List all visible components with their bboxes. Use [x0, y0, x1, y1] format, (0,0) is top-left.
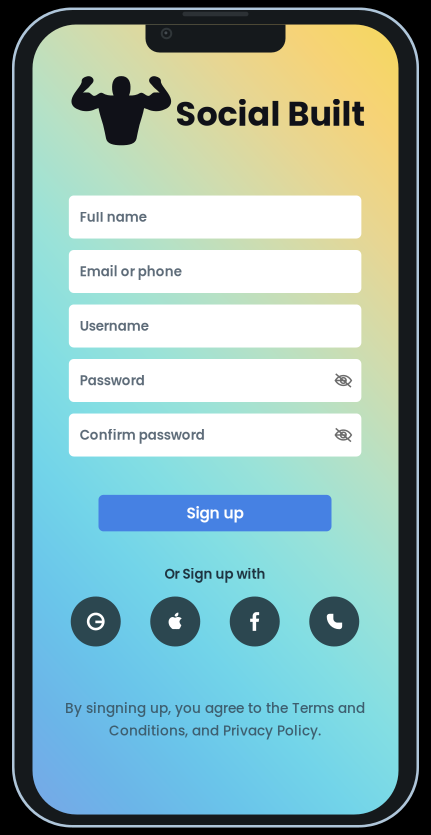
button[interactable]: Password [69, 359, 361, 402]
staticText: Confirm password [80, 426, 205, 444]
staticText: Full name [80, 208, 147, 226]
button[interactable]: Sign up [98, 495, 331, 531]
staticText: Username [80, 317, 149, 335]
staticText: Or Sign up with [164, 565, 265, 583]
button[interactable]: Email or phone [69, 250, 361, 293]
staticText: By singning up, you agree to the Terms a… [65, 699, 365, 718]
button[interactable]: Sign up with Google [71, 596, 121, 646]
staticText: Sign up [186, 502, 243, 524]
staticText: Conditions, and Privacy Policy. [109, 721, 321, 740]
button[interactable]: Sign up with Apple [150, 596, 200, 646]
button[interactable]: Confirm password [69, 413, 361, 456]
button[interactable]: Full name [69, 195, 361, 238]
staticText: Social Built [175, 91, 365, 137]
button[interactable]: Username [69, 304, 361, 347]
staticText: Email or phone [80, 262, 182, 281]
button[interactable]: Sign up with phone number [309, 596, 359, 646]
button[interactable]: Sign up with Facebook [230, 596, 280, 646]
staticText: Password [80, 371, 145, 390]
